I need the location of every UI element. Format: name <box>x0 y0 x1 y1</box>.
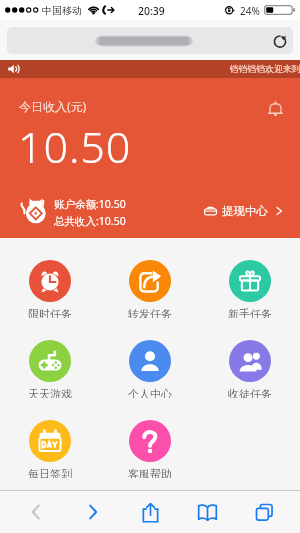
button[interactable]: 收徒任务 <box>200 318 300 398</box>
button[interactable]: Reload <box>7 27 293 54</box>
staticText: 提现中心 <box>222 204 268 218</box>
staticText: 新手任务 <box>228 307 272 318</box>
staticText: 个人中心 <box>128 387 172 398</box>
staticText: 转发任务 <box>128 307 172 318</box>
staticText: 24% <box>240 4 260 18</box>
staticText: 总共收入:10.50 <box>54 214 126 228</box>
staticText: 限时任务 <box>28 307 72 318</box>
button[interactable]: Forward <box>71 491 115 533</box>
other: Reload <box>273 34 287 48</box>
staticText: 客服帮助 <box>128 467 172 478</box>
button[interactable]: Notifications <box>262 95 288 121</box>
button[interactable]: 转发任务 <box>100 238 200 318</box>
button[interactable]: 个人中心 <box>100 318 200 398</box>
staticText: 今日收入(元) <box>19 98 87 114</box>
button[interactable]: 每日签到 <box>0 398 100 478</box>
button[interactable]: 新手任务 <box>200 238 300 318</box>
staticText: 铛铛铛铛欢迎来到小 <box>230 64 300 75</box>
other: Announcement <box>8 64 18 74</box>
button[interactable]: 提现中心 <box>202 198 286 224</box>
button[interactable]: 客服帮助 <box>100 398 200 478</box>
button[interactable]: Bookmarks <box>185 491 229 533</box>
button[interactable]: 限时任务 <box>0 238 100 318</box>
staticText: 10.50 <box>18 117 132 176</box>
button[interactable]: 天天游戏 <box>0 318 100 398</box>
button[interactable]: Back <box>14 491 58 533</box>
button[interactable]: Tabs <box>242 491 286 533</box>
staticText: 每日签到 <box>28 467 72 478</box>
staticText: 收徒任务 <box>228 387 272 398</box>
button[interactable]: Share <box>128 491 172 533</box>
staticText: 天天游戏 <box>28 387 72 398</box>
staticText: 账户余额:10.50 <box>54 197 126 211</box>
staticText: 20:39 <box>138 4 165 18</box>
staticText: 中国移动 <box>42 4 82 17</box>
